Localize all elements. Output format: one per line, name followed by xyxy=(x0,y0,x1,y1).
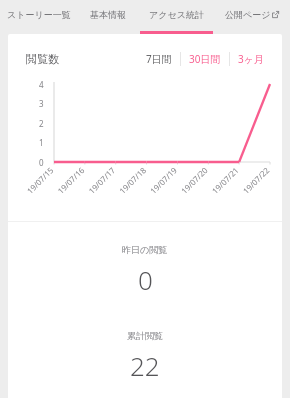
button[interactable]: 7日間 xyxy=(138,48,180,70)
button[interactable]: 基本情報 xyxy=(77,0,138,34)
button[interactable]: ストーリー一覧 xyxy=(0,0,77,34)
staticText: 基本情報 xyxy=(90,9,126,20)
staticText: ストーリー一覧 xyxy=(7,9,71,20)
staticText: 閲覧数 xyxy=(26,52,59,66)
staticText: 3ヶ月 xyxy=(238,52,264,66)
staticText: 公開ページ xyxy=(225,9,271,20)
button[interactable]: 30日間 xyxy=(181,48,229,70)
staticText: 22 xyxy=(130,348,160,383)
staticText: 0 xyxy=(138,262,153,297)
button[interactable]: アクセス統計 xyxy=(138,0,214,34)
staticText: アクセス統計 xyxy=(149,9,204,20)
staticText: 累計閲覧 xyxy=(127,330,163,341)
staticText: 7日間 xyxy=(146,52,172,66)
staticText: 30日間 xyxy=(189,52,221,66)
staticText: 昨日の閲覧 xyxy=(122,244,168,255)
button[interactable]: 3ヶ月 xyxy=(230,48,272,70)
button[interactable]: 公開ページ xyxy=(214,0,290,34)
